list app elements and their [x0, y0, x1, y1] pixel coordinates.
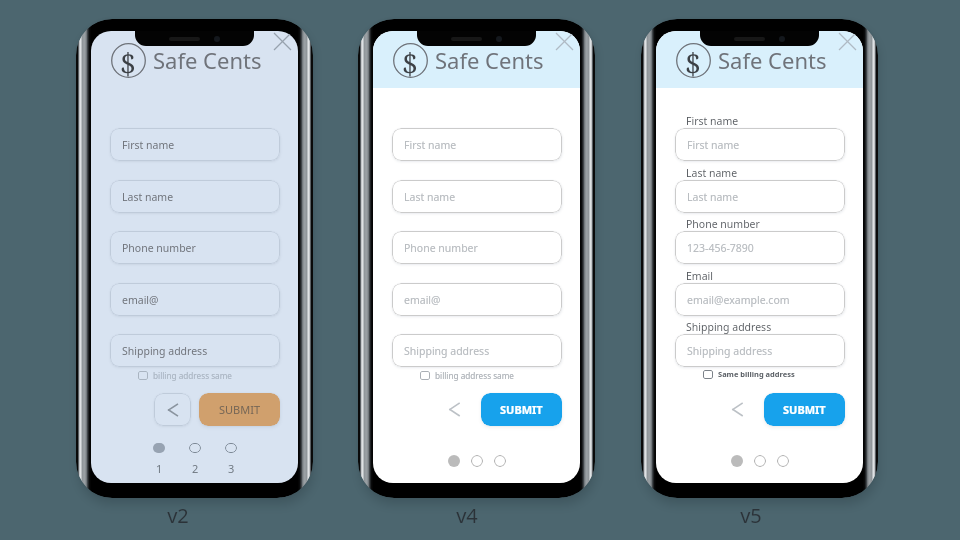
staticText: Shipping address — [404, 344, 490, 358]
button[interactable]: SUBMIT — [199, 393, 280, 426]
staticText: Email — [686, 269, 713, 283]
staticText: email@ — [404, 293, 441, 307]
staticText: email@ — [122, 293, 159, 307]
staticText: Shipping address — [687, 344, 773, 358]
staticText: 2 — [192, 461, 199, 476]
button[interactable]: SUBMIT — [481, 393, 562, 426]
staticText: SUBMIT — [500, 402, 543, 417]
button[interactable]: First name — [675, 128, 845, 161]
staticText: Phone number — [122, 241, 196, 255]
staticText: 1 — [156, 461, 163, 476]
button[interactable]: SUBMIT — [764, 393, 845, 426]
staticText: First name — [686, 114, 739, 128]
button[interactable]: Phone number — [392, 231, 562, 264]
button[interactable]: Page 3 — [494, 455, 506, 467]
button[interactable]: Close — [556, 33, 573, 50]
staticText: $ — [120, 43, 137, 78]
staticText: Shipping address — [686, 320, 772, 334]
staticText: SUBMIT — [219, 402, 261, 417]
staticText: First name — [687, 138, 740, 152]
staticText: $ — [402, 43, 419, 78]
button[interactable]: 123-456-7890 — [675, 231, 845, 264]
button[interactable]: Page 2 — [471, 455, 483, 467]
staticText: v2 — [144, 502, 212, 529]
button[interactable]: billing address same — [138, 370, 232, 381]
staticText: First name — [404, 138, 457, 152]
staticText: SUBMIT — [783, 402, 826, 417]
staticText: billing address same — [153, 370, 232, 381]
button[interactable]: Shipping address — [675, 334, 845, 367]
staticText: Phone number — [686, 217, 760, 231]
button[interactable]: Close — [839, 33, 856, 50]
button[interactable]: Page 2 — [754, 455, 766, 467]
button[interactable]: Phone number — [110, 231, 280, 264]
staticText: First name — [122, 138, 175, 152]
staticText: billing address same — [435, 370, 514, 381]
button[interactable]: Back — [154, 393, 191, 426]
staticText: Safe Cents — [435, 45, 544, 75]
button[interactable]: Last name — [110, 180, 280, 213]
button[interactable]: Page 1 — [448, 455, 460, 467]
button[interactable]: Shipping address — [392, 334, 562, 367]
button[interactable]: Close — [274, 33, 291, 50]
button[interactable]: Page 2 — [189, 443, 201, 453]
button[interactable]: Back — [719, 393, 756, 426]
staticText: Last name — [686, 166, 738, 180]
button[interactable]: Page 3 — [225, 443, 237, 453]
staticText: Last name — [122, 190, 174, 204]
button[interactable]: First name — [392, 128, 562, 161]
button[interactable]: Page 3 — [777, 455, 789, 467]
button[interactable]: email@ — [392, 283, 562, 316]
staticText: v4 — [433, 502, 501, 529]
staticText: $ — [685, 43, 702, 78]
staticText: Safe Cents — [718, 45, 827, 75]
staticText: email@example.com — [687, 293, 790, 307]
button[interactable]: Last name — [675, 180, 845, 213]
button[interactable]: Page 1 — [153, 443, 165, 453]
button[interactable]: Back — [436, 393, 473, 426]
button[interactable]: Shipping address — [110, 334, 280, 367]
button[interactable]: Last name — [392, 180, 562, 213]
staticText: 123-456-7890 — [687, 241, 754, 255]
button[interactable]: email@example.com — [675, 283, 845, 316]
staticText: Last name — [687, 190, 739, 204]
button[interactable]: Page 1 — [731, 455, 743, 467]
staticText: 3 — [228, 461, 235, 476]
staticText: Shipping address — [122, 344, 208, 358]
button[interactable]: billing address same — [420, 370, 514, 381]
staticText: Safe Cents — [153, 45, 262, 75]
staticText: Last name — [404, 190, 456, 204]
staticText: v5 — [717, 502, 785, 529]
button[interactable]: Same billing address — [703, 369, 795, 379]
staticText: Same billing address — [718, 369, 795, 379]
staticText: Phone number — [404, 241, 478, 255]
button[interactable]: email@ — [110, 283, 280, 316]
button[interactable]: First name — [110, 128, 280, 161]
